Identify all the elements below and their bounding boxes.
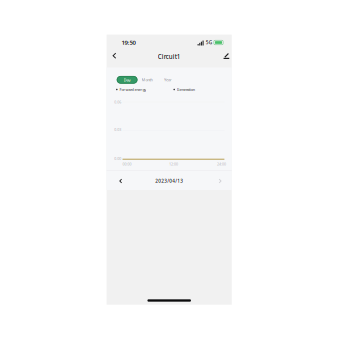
staticText: Circuit1 (158, 52, 181, 61)
staticText: Month (142, 77, 153, 82)
staticText: 0.06 (114, 99, 121, 104)
button[interactable]: Day (117, 76, 137, 83)
staticText: 2023/04/13 (155, 178, 183, 184)
button[interactable]: Edit (218, 47, 235, 64)
staticText: Forward energy (119, 87, 146, 92)
staticText: 0.00 (114, 156, 121, 161)
staticText: Generation (177, 87, 195, 92)
staticText: 00:00 (123, 162, 132, 166)
button[interactable]: Year (159, 76, 177, 83)
staticText: Day (124, 77, 131, 83)
button[interactable]: Back (106, 47, 122, 65)
button[interactable]: Next day (214, 174, 226, 188)
staticText: 0.03 (114, 127, 121, 132)
button[interactable]: Previous day (114, 174, 127, 188)
staticText: 24:00 (217, 162, 226, 166)
staticText: 19:50 (122, 38, 136, 47)
staticText: 5G (206, 39, 212, 46)
staticText: Year (164, 77, 172, 82)
staticText: 12:00 (169, 162, 178, 166)
button[interactable]: Month (136, 76, 158, 83)
